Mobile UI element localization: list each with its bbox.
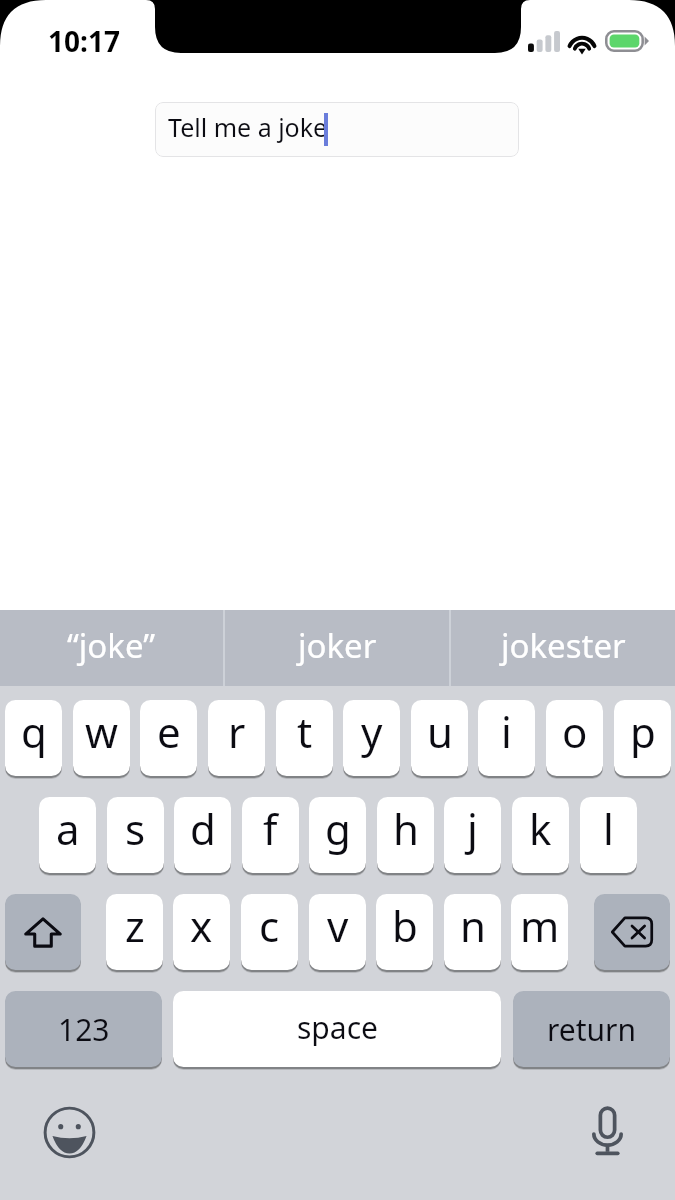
staticText: j <box>467 800 478 857</box>
button[interactable]: u <box>411 700 468 776</box>
staticText: t <box>297 703 313 760</box>
button[interactable]: m <box>511 894 568 970</box>
staticText: 10:17 <box>48 22 120 60</box>
button[interactable]: “joke” <box>0 610 223 686</box>
staticText: space <box>297 1007 378 1048</box>
button[interactable]: Dictation <box>579 1103 635 1159</box>
staticText: a <box>56 800 80 857</box>
button[interactable]: e <box>140 700 197 776</box>
staticText: x <box>190 897 213 954</box>
button[interactable]: t <box>276 700 333 776</box>
staticText: z <box>125 897 145 954</box>
button[interactable]: jokester <box>451 610 675 686</box>
button[interactable]: Shift <box>5 894 81 970</box>
staticText: 123 <box>58 1009 110 1050</box>
staticText: jokester <box>501 623 626 668</box>
button[interactable]: v <box>309 894 366 970</box>
button[interactable]: p <box>614 700 671 776</box>
button[interactable]: j <box>444 797 501 873</box>
staticText: q <box>21 703 47 760</box>
staticText: u <box>427 703 453 760</box>
staticText: e <box>157 703 181 760</box>
button[interactable]: Backspace <box>594 894 670 970</box>
staticText: f <box>263 800 278 857</box>
button[interactable]: i <box>478 700 535 776</box>
button[interactable]: n <box>444 894 501 970</box>
button[interactable]: y <box>343 700 400 776</box>
staticText: k <box>529 800 552 857</box>
button[interactable]: f <box>242 797 299 873</box>
staticText: i <box>501 703 512 760</box>
button[interactable]: a <box>39 797 96 873</box>
staticText: w <box>85 703 119 760</box>
button[interactable]: return <box>513 991 670 1067</box>
button[interactable]: c <box>241 894 298 970</box>
button[interactable]: w <box>73 700 130 776</box>
staticText: s <box>125 800 146 857</box>
button[interactable]: Tell me a joke <box>155 102 519 157</box>
staticText: v <box>327 897 349 954</box>
button[interactable]: r <box>208 700 265 776</box>
button[interactable]: o <box>546 700 603 776</box>
button[interactable]: Emoji keyboard <box>41 1104 97 1160</box>
staticText: joker <box>298 623 377 668</box>
button[interactable]: q <box>5 700 62 776</box>
button[interactable]: g <box>309 797 366 873</box>
staticText: Tell me a joke <box>168 110 328 144</box>
staticText: o <box>562 703 588 760</box>
button[interactable]: z <box>106 894 163 970</box>
button[interactable]: 123 <box>5 991 162 1067</box>
staticText: g <box>325 800 351 857</box>
staticText: “joke” <box>67 623 156 668</box>
button[interactable]: x <box>173 894 230 970</box>
button[interactable]: l <box>580 797 637 873</box>
button[interactable]: h <box>377 797 434 873</box>
staticText: n <box>460 897 486 954</box>
staticText: y <box>361 703 383 760</box>
button[interactable]: joker <box>225 610 449 686</box>
staticText: l <box>603 800 614 857</box>
button[interactable]: space <box>173 991 501 1067</box>
staticText: p <box>630 703 656 760</box>
button[interactable]: s <box>107 797 164 873</box>
button[interactable]: b <box>376 894 433 970</box>
staticText: d <box>190 800 216 857</box>
staticText: return <box>547 1009 637 1050</box>
staticText: m <box>520 897 560 954</box>
staticText: b <box>392 897 418 954</box>
staticText: h <box>393 800 419 857</box>
button[interactable]: k <box>512 797 569 873</box>
staticText: r <box>228 703 246 760</box>
staticText: c <box>259 897 280 954</box>
button[interactable]: d <box>174 797 231 873</box>
